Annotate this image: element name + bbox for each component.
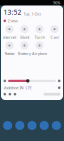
button[interactable]: Rotate: [2, 41, 17, 56]
button[interactable]: App: [26, 121, 38, 130]
staticText: Vodafone IN LTE: [3, 85, 31, 90]
staticText: Battery: [18, 51, 31, 56]
staticText: Silent: [20, 34, 29, 40]
button[interactable]: App: [14, 121, 26, 130]
button[interactable]: App: [50, 121, 62, 130]
staticText: Rotate: [4, 51, 14, 56]
button[interactable]: Silent: [17, 25, 32, 40]
button[interactable]: App: [1, 121, 14, 130]
button[interactable]: App: [38, 121, 50, 130]
staticText: Cast: [50, 34, 58, 40]
button[interactable]: Internet: [2, 25, 17, 40]
button[interactable]: Battery: [17, 41, 32, 56]
button[interactable]: Airplane: [32, 41, 47, 56]
staticText: Torch: [34, 34, 44, 40]
staticText: 13:52: [3, 8, 21, 17]
staticText: Internet: [3, 34, 16, 40]
staticText: Airplane: [32, 51, 47, 56]
button[interactable]: Torch: [32, 25, 47, 40]
button[interactable]: Cast: [47, 25, 62, 40]
staticText: 2 new: [7, 18, 17, 23]
staticText: Tue, 1 Oct: [23, 11, 40, 16]
staticText: 96%: [53, 0, 60, 5]
